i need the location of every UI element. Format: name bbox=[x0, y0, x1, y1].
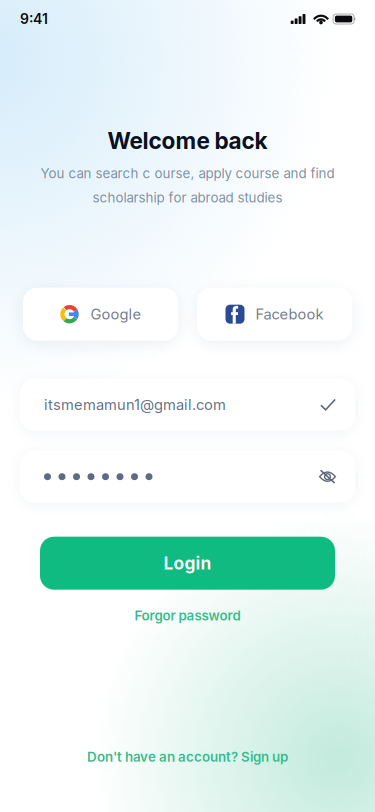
staticText: scholarship for abroad studies bbox=[92, 190, 282, 206]
staticText: Google bbox=[90, 305, 141, 323]
staticText: Don't have an account? Sign up bbox=[87, 749, 288, 765]
button[interactable]: Forgor password bbox=[134, 608, 240, 624]
button[interactable]: Login bbox=[40, 537, 335, 590]
staticText: Forgor password bbox=[134, 608, 240, 624]
staticText: itsmemamun1@gmail.com bbox=[44, 396, 226, 413]
button[interactable]: Google bbox=[23, 288, 178, 341]
staticText: Facebook bbox=[255, 305, 323, 323]
staticText: Welcome back bbox=[107, 127, 267, 154]
staticText: 9:41 bbox=[20, 10, 48, 27]
button[interactable]: Facebook bbox=[197, 288, 352, 341]
staticText: You can search c ourse, apply course and… bbox=[40, 165, 334, 181]
button[interactable]: Don't have an account? Sign up bbox=[87, 749, 288, 765]
button[interactable]: Show password bbox=[319, 469, 336, 484]
staticText: Login bbox=[163, 553, 211, 574]
